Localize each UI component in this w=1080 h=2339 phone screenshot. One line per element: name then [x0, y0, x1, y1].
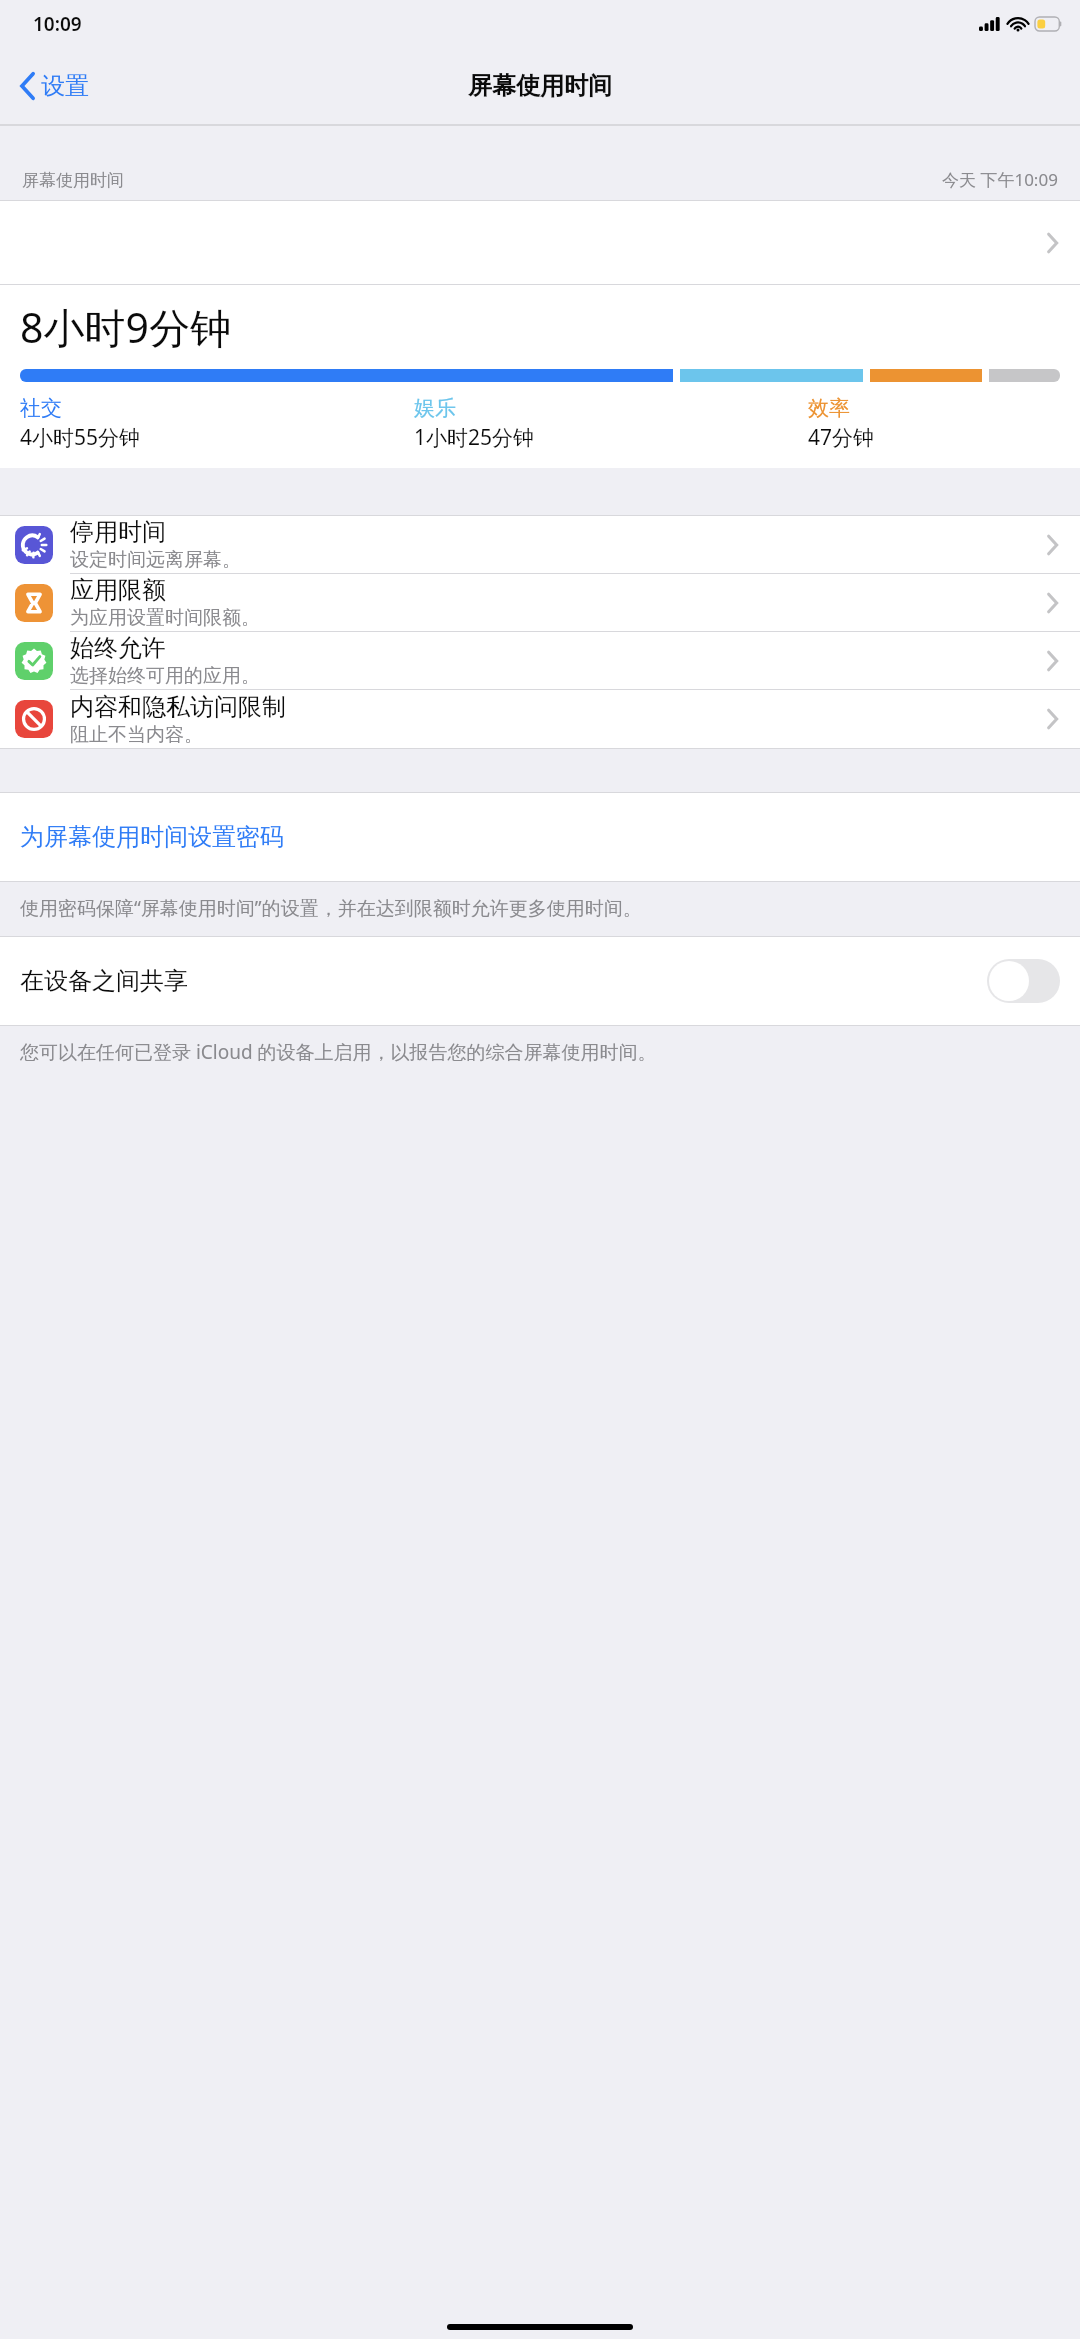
button[interactable]: 始终允许 [0, 632, 1080, 690]
staticText: 47分钟 [808, 423, 875, 452]
staticText: 设定时间远离屏幕。 [70, 548, 241, 572]
staticText: 1小时25分钟 [414, 423, 535, 452]
staticText: 阻止不当内容。 [70, 723, 203, 747]
staticText: 应用限额 [70, 575, 166, 605]
staticText: 10:09 [33, 11, 82, 37]
staticText: 始终允许 [70, 633, 166, 663]
staticText: 选择始终可用的应用。 [70, 664, 260, 688]
button[interactable]: 设置 [0, 65, 105, 107]
button[interactable]: 在设备之间共享 [0, 937, 1080, 1025]
staticText: 今天 下午10:09 [942, 168, 1058, 191]
staticText: 8小时9分钟 [20, 299, 231, 355]
button[interactable]: 内容和隐私访问限制 [0, 690, 1080, 748]
staticText: 内容和隐私访问限制 [70, 692, 286, 722]
staticText: 效率 [808, 395, 850, 421]
staticText: 设置 [41, 71, 89, 101]
staticText: 为应用设置时间限额。 [70, 606, 260, 630]
staticText: 屏幕使用时间 [22, 170, 124, 191]
other: 在设备之间共享开关 [987, 959, 1060, 1003]
button[interactable]: 应用限额 [0, 574, 1080, 632]
staticText: 社交 [20, 395, 62, 421]
staticText: 您可以在任何已登录 iCloud 的设备上启用，以报告您的综合屏幕使用时间。 [20, 1039, 657, 1065]
button[interactable]: 为屏幕使用时间设置密码 [0, 793, 1080, 881]
staticText: 使用密码保障“屏幕使用时间”的设置，并在达到限额时允许更多使用时间。 [20, 895, 642, 921]
staticText: 屏幕使用时间 [468, 71, 612, 101]
button[interactable]: 停用时间 [0, 516, 1080, 574]
staticText: 在设备之间共享 [20, 966, 987, 996]
staticText: 4小时55分钟 [20, 423, 141, 452]
staticText: 娱乐 [414, 395, 456, 421]
staticText: 停用时间 [70, 517, 166, 547]
staticText: 为屏幕使用时间设置密码 [20, 822, 284, 852]
